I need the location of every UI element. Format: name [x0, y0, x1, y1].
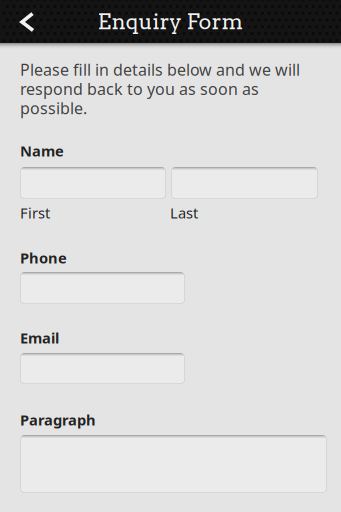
staticText: Phone	[20, 248, 67, 267]
staticText: Paragraph	[20, 410, 96, 429]
staticText: First	[20, 203, 50, 222]
button[interactable]: First name	[20, 167, 166, 199]
staticText: Name	[20, 141, 64, 160]
button[interactable]: Last name	[171, 167, 318, 199]
button[interactable]: Email	[20, 353, 185, 384]
button[interactable]: Phone	[20, 272, 185, 304]
button[interactable]: Paragraph	[20, 435, 327, 493]
button[interactable]: Back	[0, 0, 56, 43]
staticText: Please fill in details below and we will…	[20, 59, 300, 119]
staticText: Last	[170, 203, 198, 222]
staticText: Enquiry Form	[97, 8, 243, 35]
staticText: Email	[20, 328, 59, 347]
